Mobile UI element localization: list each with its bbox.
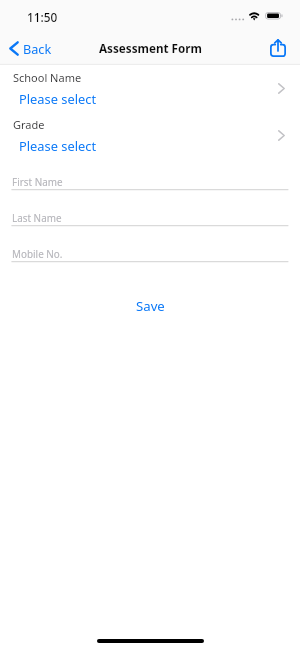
staticText: School Name bbox=[13, 70, 82, 85]
button[interactable]: First Name bbox=[0, 172, 300, 192]
staticText: Assessment Form bbox=[99, 40, 202, 56]
button[interactable]: Mobile No. bbox=[0, 244, 300, 264]
button[interactable]: Save bbox=[122, 293, 179, 317]
button[interactable]: School Name bbox=[0, 69, 300, 112]
staticText: Last Name bbox=[12, 211, 62, 224]
button[interactable]: Back bbox=[0, 32, 58, 64]
staticText: Mobile No. bbox=[12, 247, 63, 260]
staticText: Grade bbox=[13, 117, 45, 132]
staticText: Save bbox=[136, 297, 165, 313]
staticText: Back bbox=[23, 40, 52, 57]
button[interactable]: Last Name bbox=[0, 208, 300, 228]
staticText: Please select bbox=[19, 137, 97, 155]
button[interactable]: Share bbox=[266, 34, 290, 60]
staticText: First Name bbox=[12, 175, 63, 188]
button[interactable]: Grade bbox=[0, 116, 300, 159]
staticText: Please select bbox=[19, 90, 97, 108]
staticText: 11:50 bbox=[27, 9, 58, 25]
